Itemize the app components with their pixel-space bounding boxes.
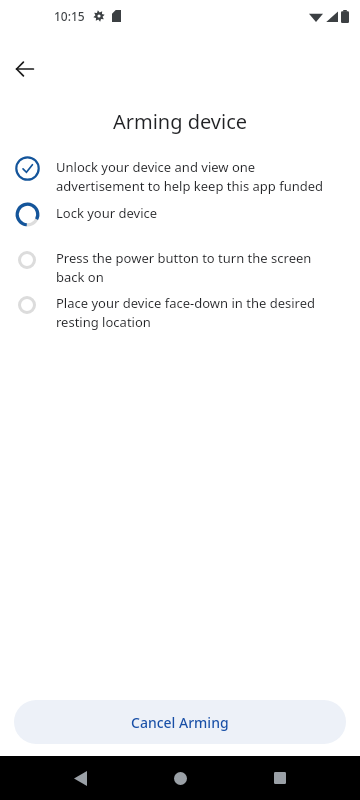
button[interactable]: Back bbox=[9, 53, 41, 85]
staticText: Cancel Arming bbox=[131, 713, 229, 732]
button[interactable]: Place your device face-down in the desir… bbox=[0, 291, 360, 331]
staticText: Arming device bbox=[0, 108, 360, 135]
staticText: Press the power button to turn the scree… bbox=[56, 249, 342, 286]
button[interactable]: Unlock your device and view one advertis… bbox=[0, 155, 360, 195]
button[interactable]: Back bbox=[55, 756, 105, 800]
button[interactable]: Recent apps bbox=[255, 756, 305, 800]
button[interactable]: Lock your device bbox=[0, 201, 360, 227]
button[interactable]: Cancel Arming bbox=[14, 700, 346, 744]
button[interactable]: Home bbox=[155, 756, 205, 800]
staticText: Unlock your device and view one advertis… bbox=[56, 158, 342, 195]
staticText: 10:15 bbox=[54, 8, 85, 24]
staticText: Place your device face-down in the desir… bbox=[56, 294, 342, 331]
button[interactable]: Press the power button to turn the scree… bbox=[0, 246, 360, 286]
staticText: Lock your device bbox=[56, 204, 158, 222]
